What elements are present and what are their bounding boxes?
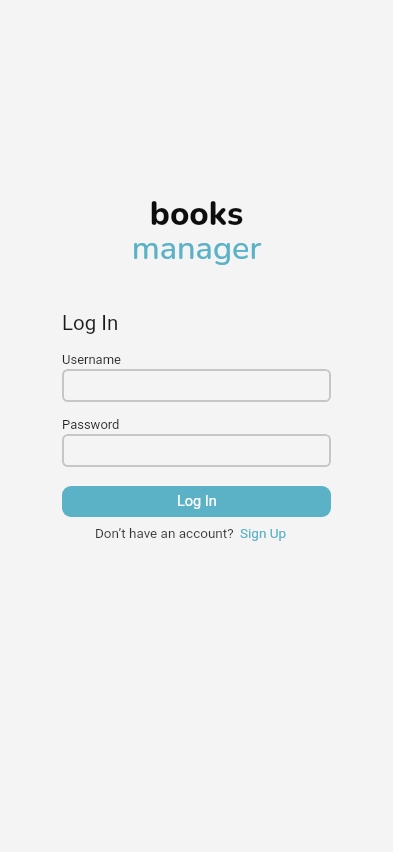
staticText: manager	[0, 226, 393, 270]
button[interactable]: Username	[62, 369, 331, 402]
staticText: Log In	[177, 493, 217, 510]
staticText: Password	[62, 417, 120, 432]
staticText: books	[0, 192, 393, 237]
staticText: Log In	[62, 311, 119, 335]
staticText: Sign Up	[240, 525, 287, 541]
staticText: Don’t have an account?	[95, 525, 234, 541]
button[interactable]: Log In	[62, 486, 331, 517]
staticText: Username	[62, 352, 121, 367]
button[interactable]: Sign Up	[240, 525, 287, 541]
button[interactable]: Password	[62, 434, 331, 467]
